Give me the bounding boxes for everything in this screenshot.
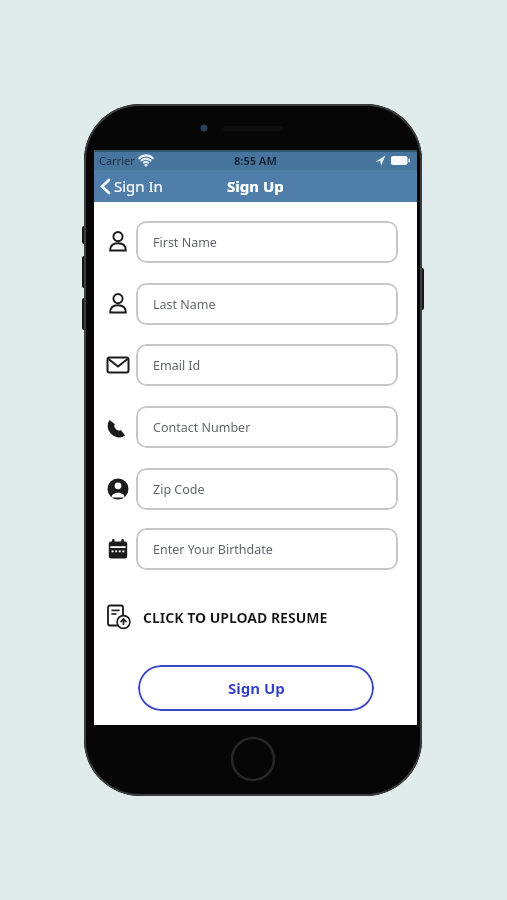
staticText: 8:55 AM bbox=[234, 153, 277, 168]
staticText: Zip Code bbox=[153, 481, 205, 498]
staticText: Email Id bbox=[153, 357, 201, 374]
button[interactable]: Sign Up bbox=[138, 665, 374, 711]
staticText: Sign Up bbox=[228, 678, 285, 698]
staticText: Contact Number bbox=[153, 419, 251, 436]
staticText: Sign In bbox=[114, 176, 163, 196]
button[interactable]: CLICK TO UPLOAD RESUME bbox=[106, 600, 328, 634]
staticText: Carrier bbox=[99, 153, 135, 168]
button[interactable]: Last Name bbox=[136, 283, 398, 325]
staticText: Enter Your Birthdate bbox=[153, 541, 273, 558]
button[interactable]: Sign In bbox=[100, 176, 163, 196]
staticText: First Name bbox=[153, 234, 217, 251]
button[interactable]: Email Id bbox=[136, 344, 398, 386]
button[interactable]: Enter Your Birthdate bbox=[136, 528, 398, 570]
button[interactable]: Zip Code bbox=[136, 468, 398, 510]
staticText: Sign Up bbox=[227, 176, 284, 196]
staticText: CLICK TO UPLOAD RESUME bbox=[143, 608, 328, 627]
button[interactable]: Contact Number bbox=[136, 406, 398, 448]
staticText: Last Name bbox=[153, 296, 216, 313]
button[interactable]: First Name bbox=[136, 221, 398, 263]
